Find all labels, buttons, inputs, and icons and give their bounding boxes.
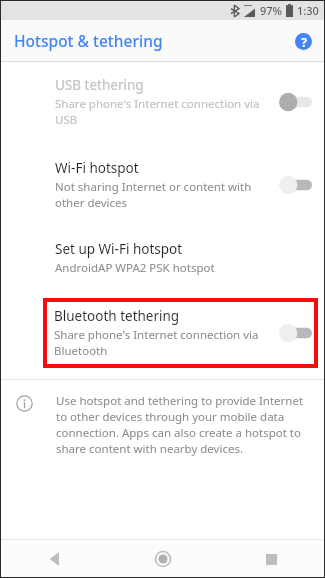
button[interactable]: Set up Wi-Fi hotspot	[0, 236, 325, 284]
button[interactable]: Toggle off	[278, 323, 312, 343]
staticText: Set up Wi-Fi hotspot	[55, 240, 183, 258]
staticText: USB tethering	[55, 76, 144, 94]
other: Toggle disabled	[278, 92, 312, 112]
staticText: Not sharing Internet or content with oth…	[55, 179, 272, 210]
staticText: Wi-Fi hotspot	[55, 159, 139, 177]
staticText: Share phone's Internet connection via US…	[55, 96, 272, 127]
button[interactable]: Bluetooth tethering	[43, 298, 318, 368]
staticText: Bluetooth tethering	[54, 307, 180, 325]
staticText: 97%	[260, 3, 282, 18]
button[interactable]: Toggle off	[278, 175, 312, 195]
button[interactable]: Back	[0, 540, 109, 578]
staticText: Use hotspot and tethering to provide Int…	[56, 393, 311, 457]
staticText: Share phone's Internet connection via Bl…	[54, 327, 274, 358]
button[interactable]: Help	[289, 27, 317, 55]
button[interactable]: USB tethering	[0, 62, 325, 139]
staticText: ?	[301, 34, 307, 50]
staticText: AndroidAP WPA2 PSK hotspot	[55, 260, 215, 276]
button[interactable]: Recent apps	[217, 540, 325, 578]
button[interactable]: Wi-Fi hotspot	[0, 153, 325, 220]
button[interactable]: Home	[109, 540, 217, 578]
staticText: Hotspot & tethering	[14, 30, 163, 51]
staticText: 1:30	[297, 3, 319, 18]
